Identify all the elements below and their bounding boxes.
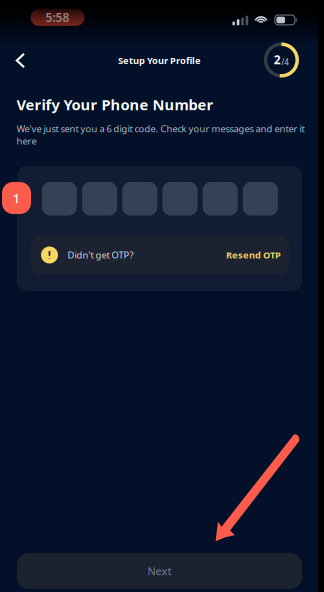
button[interactable]: Digit: [122, 182, 157, 215]
staticText: Verify Your Phone Number: [16, 95, 213, 114]
button[interactable]: Step 2 of 4: [261, 40, 301, 80]
button[interactable]: Digit: [82, 182, 117, 215]
button[interactable]: Digit: [243, 182, 278, 215]
staticText: Next: [147, 564, 171, 578]
button[interactable]: Digit: [203, 182, 238, 215]
button[interactable]: Back: [2, 40, 38, 80]
staticText: 1: [12, 189, 20, 207]
button[interactable]: Next: [17, 553, 302, 589]
staticText: Setup Your Profile: [118, 54, 201, 67]
staticText: Didn't get OTP?: [67, 249, 133, 261]
staticText: 2: [274, 51, 281, 67]
staticText: We've just sent you a 6 digit code. Chec…: [16, 122, 304, 147]
staticText: /4: [281, 57, 289, 67]
staticText: Resend OTP: [226, 249, 281, 261]
staticText: 5:58: [45, 9, 69, 25]
button[interactable]: Resend OTP: [226, 249, 281, 261]
button[interactable]: Digit: [162, 182, 197, 215]
button[interactable]: Digit: [42, 182, 77, 215]
